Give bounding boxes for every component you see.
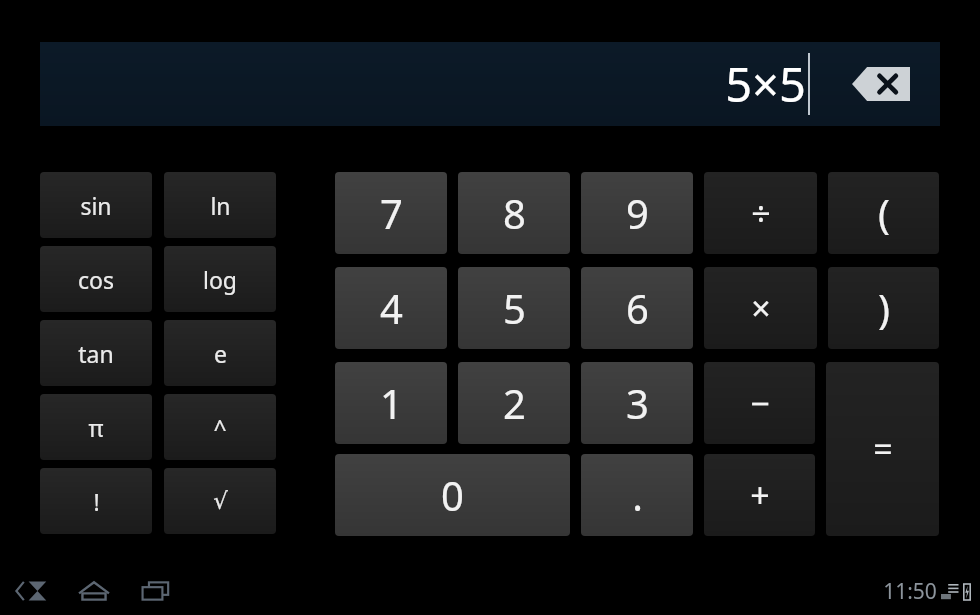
button[interactable]: ln bbox=[164, 172, 276, 238]
staticText: 5×5 bbox=[725, 52, 806, 116]
staticText: 11:50 bbox=[883, 577, 937, 606]
staticText: − bbox=[750, 380, 770, 426]
staticText: ^ bbox=[213, 412, 227, 443]
button[interactable]: 2 bbox=[458, 362, 570, 444]
staticText: 8 bbox=[503, 186, 526, 240]
button[interactable]: 0 bbox=[335, 454, 570, 536]
staticText: ! bbox=[93, 486, 100, 517]
button[interactable]: Recent apps bbox=[132, 569, 180, 613]
staticText: π bbox=[88, 412, 104, 443]
button[interactable]: e bbox=[164, 320, 276, 386]
button[interactable]: ! bbox=[40, 468, 152, 534]
button[interactable]: √ bbox=[164, 468, 276, 534]
button[interactable]: 5 bbox=[458, 267, 570, 349]
button[interactable]: − bbox=[704, 362, 815, 444]
button[interactable]: Back bbox=[8, 569, 56, 613]
staticText: log bbox=[203, 264, 237, 295]
button[interactable]: × bbox=[704, 267, 817, 349]
staticText: × bbox=[751, 285, 771, 331]
button[interactable]: ) bbox=[828, 267, 939, 349]
button[interactable]: Backspace bbox=[844, 58, 918, 110]
button[interactable]: sin bbox=[40, 172, 152, 238]
button[interactable]: 7 bbox=[335, 172, 447, 254]
button[interactable]: 5×5 bbox=[40, 42, 940, 126]
staticText: 9 bbox=[626, 186, 649, 240]
button[interactable]: 9 bbox=[581, 172, 693, 254]
staticText: ln bbox=[210, 190, 231, 221]
button[interactable]: π bbox=[40, 394, 152, 460]
button[interactable]: 6 bbox=[581, 267, 693, 349]
staticText: √ bbox=[213, 488, 228, 515]
staticText: 7 bbox=[380, 186, 403, 240]
staticText: + bbox=[750, 472, 770, 518]
staticText: 3 bbox=[626, 376, 649, 430]
button[interactable]: log bbox=[164, 246, 276, 312]
staticText: 6 bbox=[626, 281, 649, 335]
button[interactable]: 4 bbox=[335, 267, 447, 349]
staticText: tan bbox=[78, 338, 114, 369]
staticText: e bbox=[214, 338, 227, 369]
button[interactable]: cos bbox=[40, 246, 152, 312]
staticText: . bbox=[632, 468, 643, 522]
staticText: ) bbox=[878, 281, 890, 335]
staticText: 2 bbox=[503, 376, 526, 430]
button[interactable]: . bbox=[581, 454, 693, 536]
button[interactable]: ÷ bbox=[704, 172, 817, 254]
staticText: ÷ bbox=[751, 190, 771, 236]
button[interactable]: ( bbox=[828, 172, 939, 254]
staticText: 4 bbox=[380, 281, 403, 335]
button[interactable]: = bbox=[826, 362, 939, 536]
staticText: ( bbox=[878, 186, 890, 240]
button[interactable]: tan bbox=[40, 320, 152, 386]
button[interactable]: Home bbox=[70, 569, 118, 613]
staticText: = bbox=[873, 426, 893, 472]
staticText: sin bbox=[80, 190, 112, 221]
staticText: 0 bbox=[441, 468, 464, 522]
button[interactable]: 3 bbox=[581, 362, 693, 444]
button[interactable]: + bbox=[704, 454, 815, 536]
staticText: cos bbox=[78, 264, 114, 295]
button[interactable]: 8 bbox=[458, 172, 570, 254]
button[interactable]: ^ bbox=[164, 394, 276, 460]
staticText: 1 bbox=[380, 376, 403, 430]
staticText: 5 bbox=[503, 281, 526, 335]
button[interactable]: 1 bbox=[335, 362, 447, 444]
